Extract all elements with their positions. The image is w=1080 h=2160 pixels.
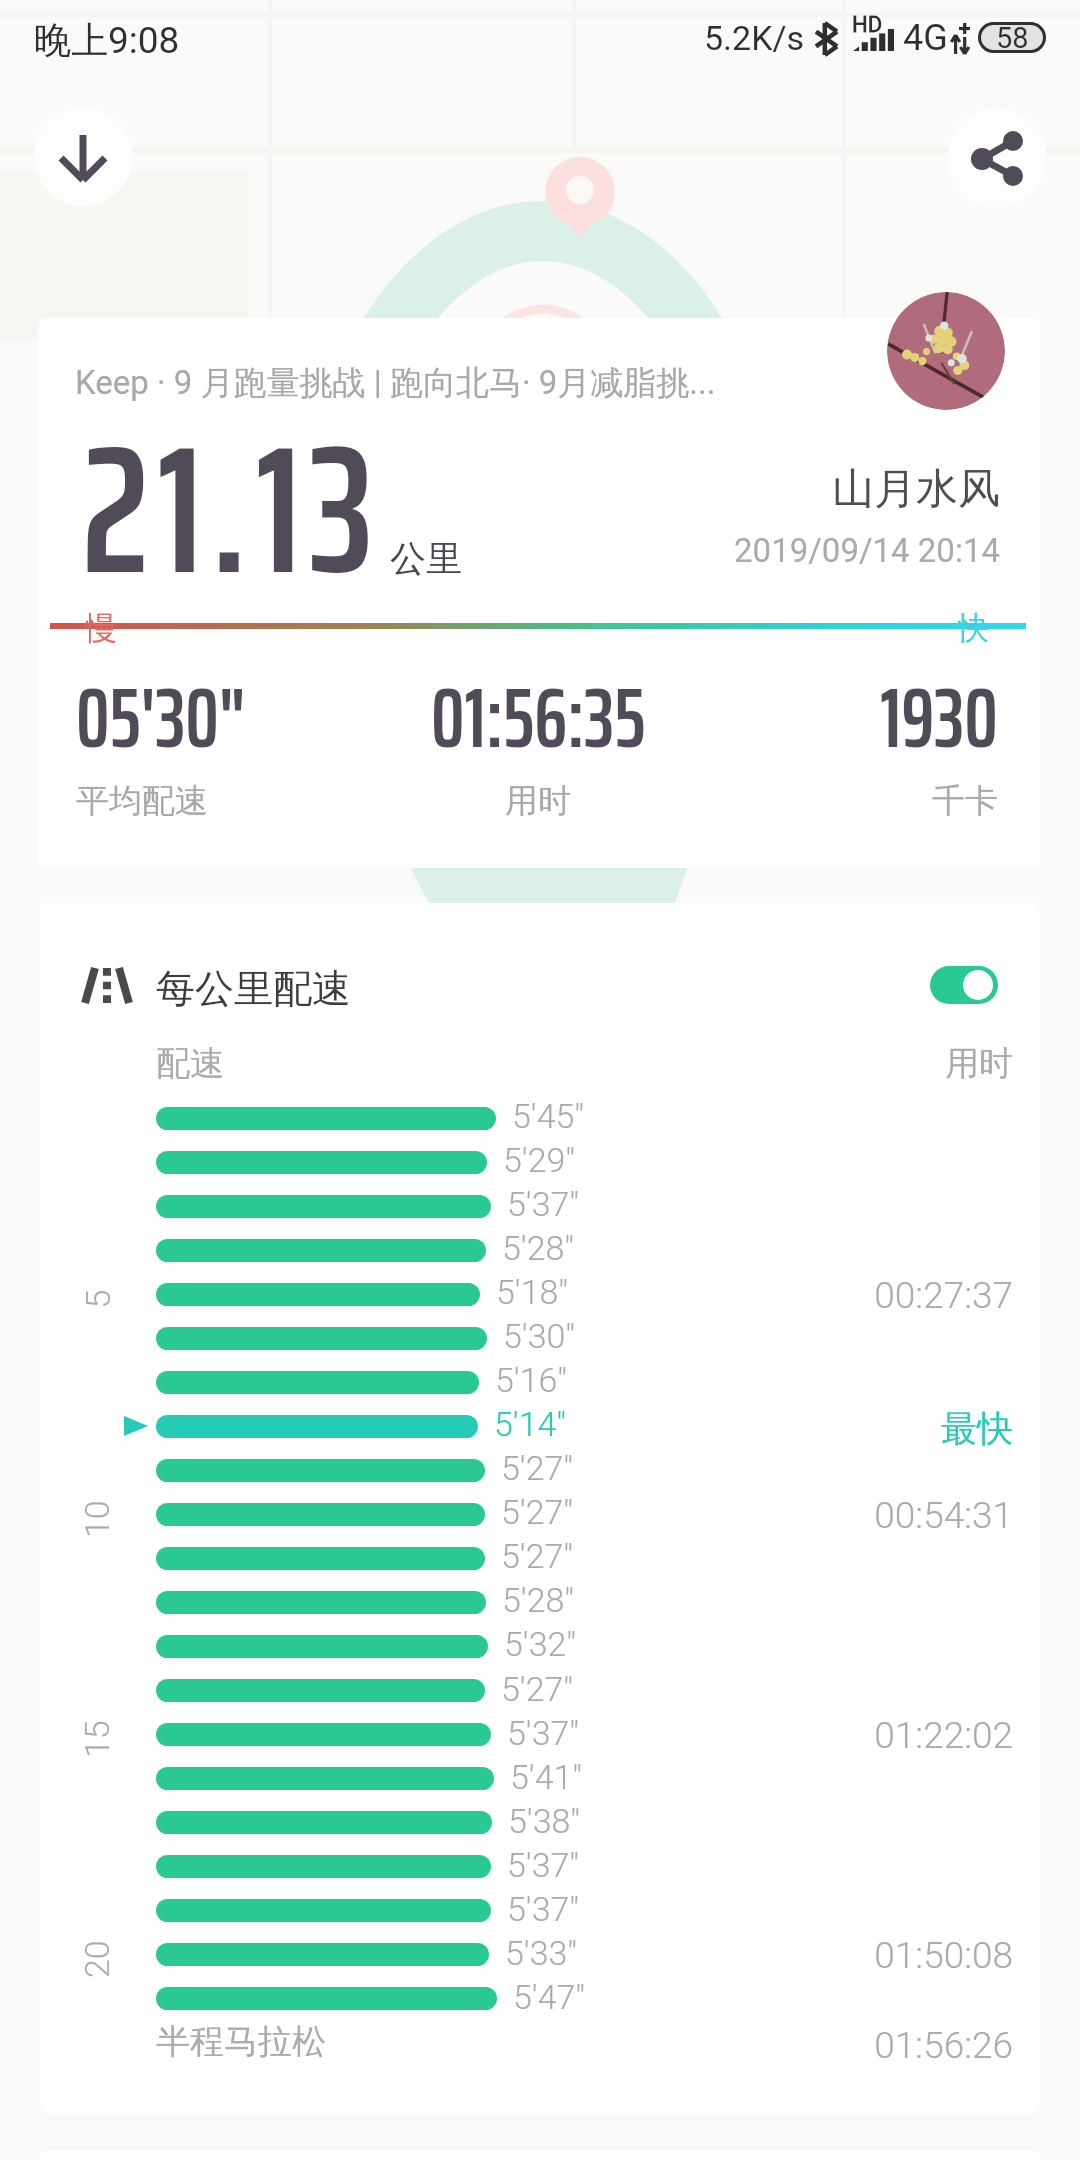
staticText: 20 <box>77 1940 117 1978</box>
staticText: 半程马拉松 <box>156 2020 326 2063</box>
staticText: 5'45" <box>512 1096 585 1136</box>
staticText: 1930 <box>880 652 998 784</box>
staticText: 5'14" <box>494 1404 567 1444</box>
staticText: 58 <box>996 21 1029 52</box>
staticText: 5'27" <box>501 1492 574 1532</box>
staticText: 慢 <box>85 608 117 648</box>
staticText: 5'28" <box>502 1228 575 1268</box>
staticText: 5'28" <box>502 1580 575 1620</box>
staticText: 5'41" <box>510 1757 583 1797</box>
staticText: 5 <box>77 1289 117 1308</box>
staticText: 01:50:08 <box>680 1934 1013 1977</box>
staticText: Keep · 9 月跑量挑战 | 跑向北马· 9月减脂挑... <box>75 362 716 404</box>
staticText: 山月水风 <box>738 463 1000 516</box>
button[interactable]: Toggle per-kilometre pace <box>930 966 998 1004</box>
staticText: 01:56:35 <box>431 652 646 784</box>
staticText: 00:27:37 <box>680 1274 1013 1317</box>
staticText: 5.2K/s <box>704 18 805 58</box>
staticText: 5'18" <box>496 1272 569 1312</box>
staticText: 5'27" <box>501 1669 574 1709</box>
staticText: 2019/09/14 20:14 <box>598 531 1000 570</box>
staticText: 配速 <box>156 1042 224 1085</box>
staticText: 5'37" <box>507 1845 580 1885</box>
staticText: 01:56:26 <box>680 2024 1013 2067</box>
staticText: 用时 <box>505 780 571 822</box>
staticText: 平均配速 <box>76 780 208 822</box>
staticText: 5'47" <box>513 1977 586 2017</box>
staticText: 05'30" <box>76 652 246 784</box>
staticText: 5'27" <box>501 1448 574 1488</box>
staticText: 快 <box>957 608 989 648</box>
staticText: 每公里配速 <box>156 964 351 1013</box>
staticText: 5'33" <box>505 1933 578 1973</box>
staticText: 15 <box>77 1720 117 1758</box>
staticText: 10 <box>77 1500 117 1538</box>
button[interactable]: Download <box>34 108 132 206</box>
staticText: 5'29" <box>503 1140 576 1180</box>
staticText: 公里 <box>390 536 462 581</box>
staticText: 5'37" <box>507 1713 580 1753</box>
staticText: 21.13 <box>82 368 382 651</box>
staticText: 5'30" <box>503 1316 576 1356</box>
staticText: 用时 <box>800 1042 1013 1085</box>
staticText: 5'16" <box>495 1360 568 1400</box>
staticText: 5'27" <box>501 1536 574 1576</box>
staticText: 4G <box>903 17 948 59</box>
staticText: 5'32" <box>504 1624 577 1664</box>
staticText: 最快 <box>680 1406 1013 1451</box>
staticText: HD <box>852 12 883 38</box>
staticText: 01:22:02 <box>680 1714 1013 1757</box>
staticText: 千卡 <box>932 780 998 822</box>
button[interactable]: Share <box>948 109 1046 207</box>
staticText: 晚上9:08 <box>34 17 180 64</box>
staticText: 5'37" <box>507 1184 580 1224</box>
staticText: 00:54:31 <box>680 1494 1013 1537</box>
staticText: 5'37" <box>507 1889 580 1929</box>
staticText: 5'38" <box>508 1801 581 1841</box>
